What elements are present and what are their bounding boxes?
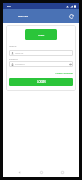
- button[interactable]: Home: [37, 168, 46, 177]
- staticText: Password: [15, 63, 25, 66]
- button[interactable]: LOGIN: [9, 78, 73, 86]
- staticText: LOGIN: [37, 80, 46, 84]
- staticText: Ride Line: [18, 15, 29, 18]
- button[interactable]: Login ID: [11, 50, 72, 56]
- staticText: Login ID: [9, 45, 17, 48]
- button[interactable]: Login: [25, 29, 57, 40]
- staticText: 9:41: [7, 5, 12, 8]
- staticText: Password: [9, 58, 18, 61]
- staticText: Login ID: [15, 52, 24, 55]
- staticText: Login: [38, 33, 45, 36]
- button[interactable]: Back: [15, 168, 24, 177]
- button[interactable]: Show password: [68, 62, 72, 66]
- button[interactable]: Forgot Password?: [9, 72, 73, 75]
- button[interactable]: Recents: [58, 168, 67, 177]
- button[interactable]: Password: [11, 61, 72, 67]
- button[interactable]: Refresh: [67, 12, 76, 21]
